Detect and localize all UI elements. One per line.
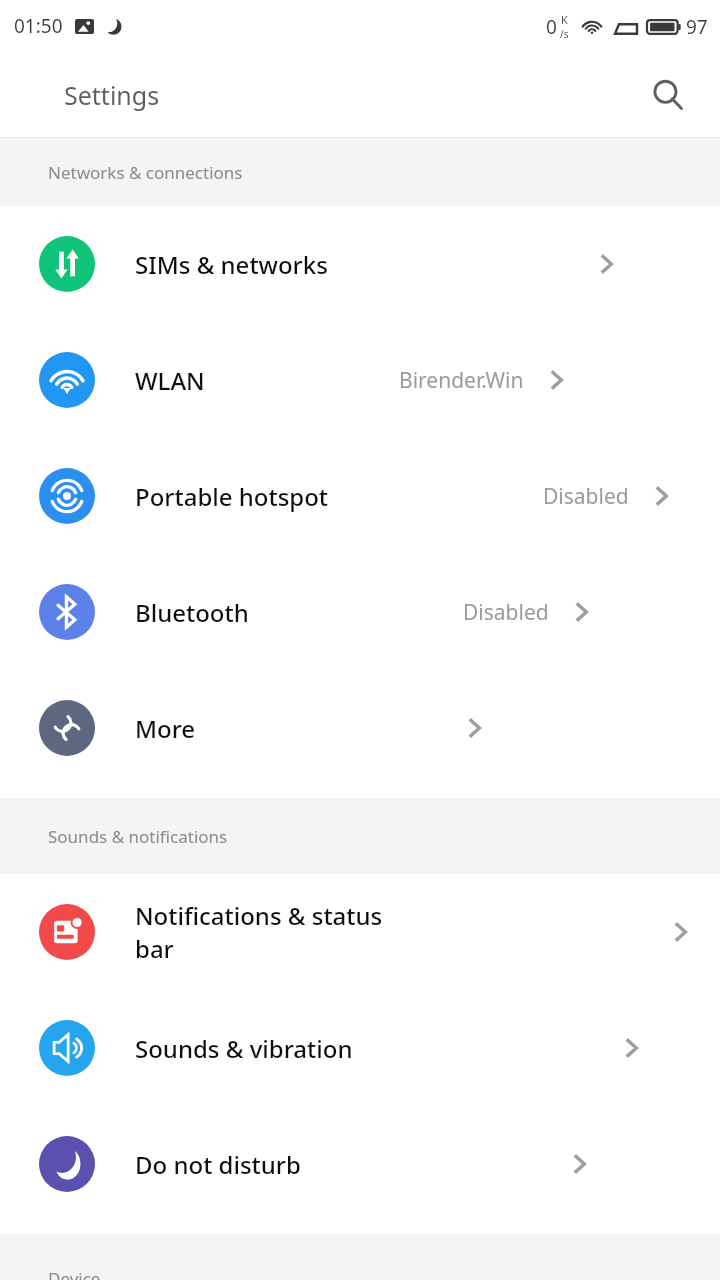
staticText: More <box>135 712 196 745</box>
staticText: 01:50 <box>14 13 63 39</box>
button[interactable]: Sounds & vibration <box>0 990 720 1106</box>
button[interactable]: Bluetooth <box>0 554 720 670</box>
button[interactable]: Search <box>644 71 692 119</box>
staticText: Portable hotspot <box>135 480 329 513</box>
button[interactable]: More <box>0 670 720 786</box>
staticText: WLAN <box>135 364 205 397</box>
staticText: /s <box>560 27 569 41</box>
staticText: Settings <box>64 78 160 112</box>
staticText: Sounds & notifications <box>48 825 228 848</box>
staticText: SIMs & networks <box>135 248 328 281</box>
button[interactable]: Portable hotspot <box>0 438 720 554</box>
staticText: Do not disturb <box>135 1148 301 1181</box>
staticText: Disabled <box>543 482 629 511</box>
button[interactable]: Do not disturb <box>0 1106 720 1222</box>
staticText: Sounds & vibration <box>135 1032 353 1065</box>
staticText: 0 <box>546 14 557 40</box>
button[interactable]: Notifications & status bar <box>0 874 720 990</box>
staticText: Birender.Win <box>399 366 524 395</box>
staticText: Device <box>48 1267 101 1280</box>
staticText: Bluetooth <box>135 596 249 629</box>
staticText: K <box>561 12 568 27</box>
staticText: Networks & connections <box>48 161 243 184</box>
staticText: Disabled <box>463 598 549 627</box>
button[interactable]: SIMs & networks <box>0 206 720 322</box>
staticText: Notifications & status bar <box>135 899 402 965</box>
staticText: 97 <box>686 14 708 40</box>
button[interactable]: WLAN <box>0 322 720 438</box>
